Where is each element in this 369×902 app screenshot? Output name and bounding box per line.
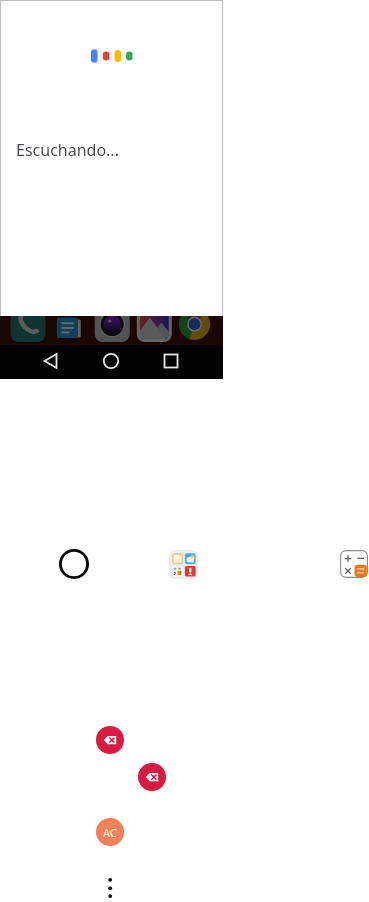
button[interactable]: Backspace — [96, 726, 124, 754]
staticText: Escuchando... — [16, 139, 119, 161]
button[interactable]: Recents — [157, 345, 185, 379]
button[interactable]: Circle — [59, 549, 89, 579]
button[interactable]: Back — [37, 345, 65, 379]
button[interactable]: Calculadora — [340, 550, 368, 578]
button[interactable]: Folder — [169, 550, 198, 579]
button[interactable]: Más opciones — [98, 870, 122, 902]
button[interactable]: Home — [97, 345, 125, 379]
staticText: AC — [103, 825, 117, 840]
button[interactable]: Backspace — [138, 763, 166, 791]
button[interactable]: AC — [96, 818, 124, 846]
